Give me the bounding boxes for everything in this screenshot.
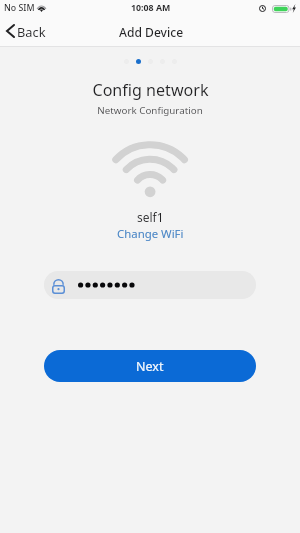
button[interactable] xyxy=(44,271,256,299)
staticText: 10:08 AM xyxy=(131,2,171,14)
button[interactable]: Next xyxy=(44,350,256,382)
button[interactable]: Change WiFi xyxy=(109,224,192,244)
button[interactable]: Back xyxy=(0,19,54,44)
staticText: self1 xyxy=(137,209,164,225)
staticText: Next xyxy=(136,358,164,375)
staticText: No SIM xyxy=(4,2,35,14)
staticText: Back xyxy=(17,23,46,40)
staticText: Network Configuration xyxy=(97,104,203,117)
staticText: Config network xyxy=(92,79,209,101)
staticText: Add Device xyxy=(119,24,184,40)
